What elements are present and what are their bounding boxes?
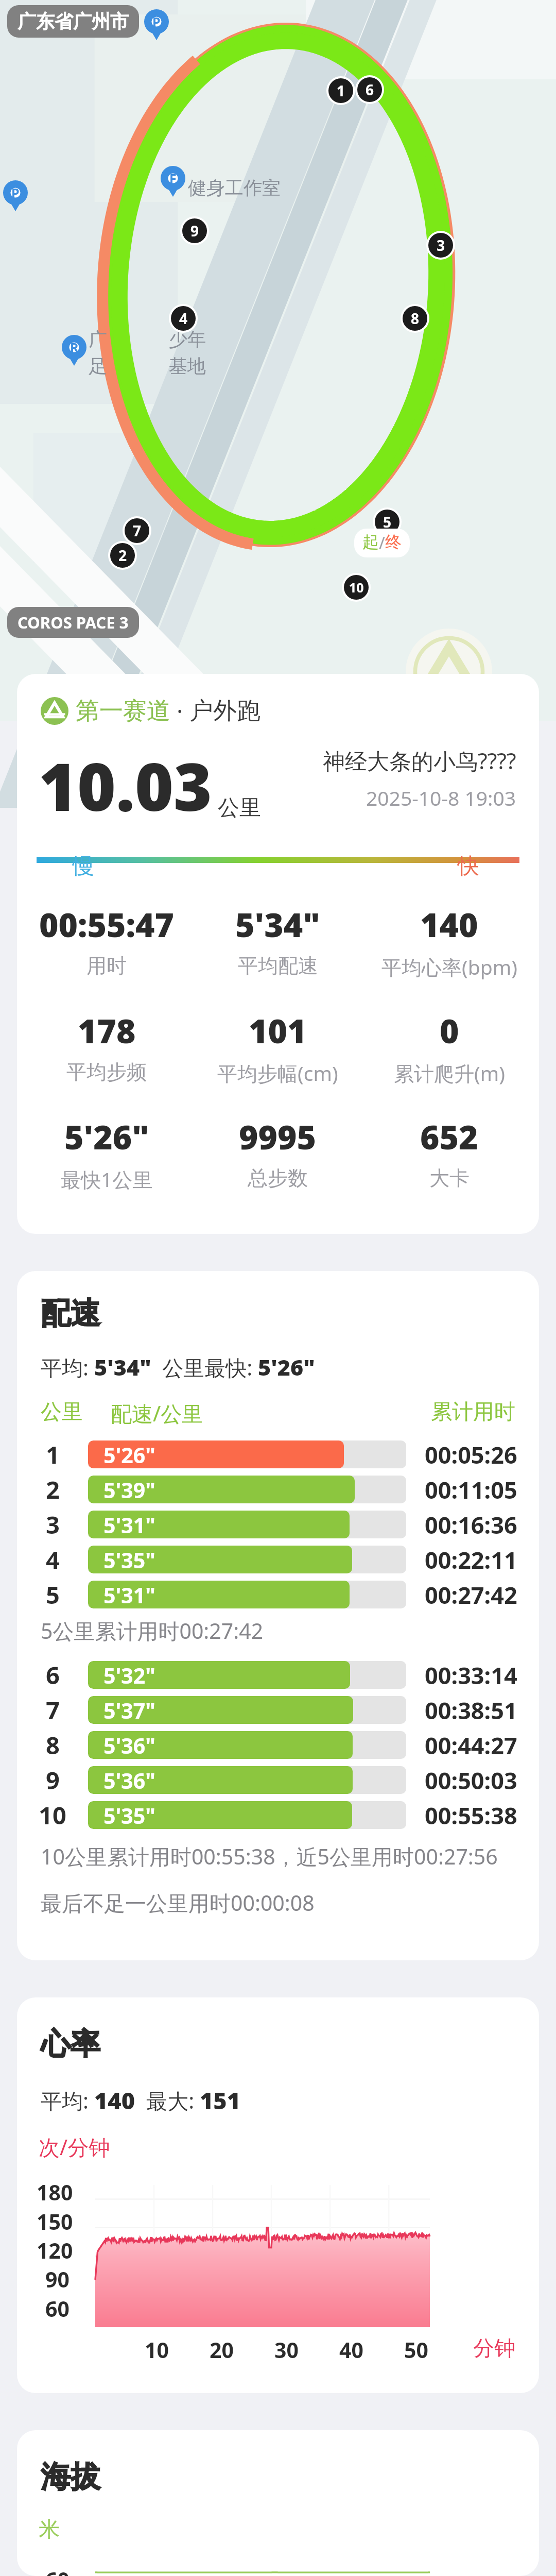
staticText: 基地 [169, 354, 206, 378]
staticText: 健身工作室 [188, 176, 281, 199]
button[interactable]: 3 [428, 233, 453, 258]
button[interactable]: 00:55:47 [21, 902, 192, 978]
staticText: 公里最快: [151, 1353, 258, 1382]
staticText: 00:38:51 [425, 1694, 517, 1726]
button[interactable]: 5 [17, 1577, 539, 1612]
staticText: 最大: [135, 2086, 200, 2115]
button[interactable]: 6 [357, 77, 382, 102]
button[interactable]: 2 [17, 1472, 539, 1507]
button[interactable]: 10 [344, 575, 369, 600]
staticText: 00:55:38 [425, 1800, 517, 1831]
button[interactable]: 8 [17, 1727, 539, 1762]
staticText: 5'31" [103, 1511, 155, 1538]
staticText: 3 [46, 1508, 60, 1541]
staticText: 8 [411, 309, 420, 328]
staticText: 5'31" [103, 1581, 155, 1608]
staticText: 1 [46, 1438, 60, 1471]
staticText: 6 [366, 80, 374, 99]
button[interactable]: 8 [403, 306, 427, 331]
staticText: 30 [274, 2335, 299, 2364]
staticText: 60 [45, 2565, 69, 2576]
staticText: · [170, 694, 189, 727]
staticText: 9 [46, 1764, 60, 1797]
other: 地图兴趣点 [3, 180, 28, 211]
staticText: 平均步频 [66, 1059, 147, 1084]
staticText: 公里 [218, 794, 261, 822]
staticText: 户外跑 [189, 696, 260, 726]
staticText: 平均: [41, 1353, 94, 1382]
staticText: 00:22:11 [425, 1544, 517, 1575]
staticText: 7 [46, 1693, 60, 1726]
button[interactable]: 652 [363, 1114, 535, 1191]
staticText: 5'36" [103, 1731, 155, 1759]
button[interactable]: 3 [17, 1507, 539, 1542]
staticText: 少年 [169, 328, 206, 351]
button[interactable]: 10 [17, 1798, 539, 1833]
button[interactable]: 5'34" [192, 902, 363, 978]
button[interactable]: 5'26" [21, 1114, 192, 1193]
staticText: 0 [440, 1008, 459, 1053]
staticText: 140 [420, 902, 478, 947]
staticText: 5 [46, 1578, 60, 1611]
staticText: 神经大条的小鸟???? [323, 745, 516, 776]
staticText: 累计用时 [431, 1399, 515, 1426]
button[interactable]: 7 [125, 518, 149, 543]
staticText: 慢 [73, 853, 94, 880]
staticText: 178 [78, 1008, 136, 1053]
staticText: 20 [210, 2335, 234, 2364]
staticText: 总步数 [248, 1165, 308, 1191]
staticText: COROS PACE 3 [18, 612, 129, 633]
staticText: 00:33:14 [425, 1659, 517, 1691]
other: 地图兴趣点 [161, 166, 185, 197]
button[interactable]: 101 [192, 1008, 363, 1087]
staticText: 2 [46, 1473, 60, 1506]
button[interactable]: 9995 [192, 1114, 363, 1191]
button[interactable]: 0 [363, 1008, 535, 1087]
staticText: 00:11:05 [425, 1474, 517, 1505]
staticText: 起 [362, 532, 379, 552]
staticText: 101 [249, 1008, 307, 1053]
staticText: 累计爬升(m) [394, 1059, 505, 1087]
staticText: 00:05:26 [425, 1439, 517, 1470]
staticText: R [70, 338, 79, 356]
staticText: 50 [404, 2335, 428, 2364]
staticText: 120 [37, 2236, 73, 2265]
staticText: 00:27:42 [425, 1579, 517, 1611]
button[interactable]: 9 [17, 1762, 539, 1798]
staticText: 9995 [239, 1114, 317, 1159]
staticText: 终 [385, 532, 402, 552]
staticText: 10公里累计用时00:55:38，近5公里用时00:27:56 [41, 1842, 498, 1871]
button[interactable]: 178 [21, 1008, 192, 1084]
staticText: 9 [190, 221, 199, 241]
staticText: 分钟 [473, 2335, 515, 2362]
staticText: 用时 [86, 953, 127, 978]
button[interactable]: 2 [110, 543, 135, 568]
staticText: 最快1公里 [61, 1165, 153, 1193]
button[interactable]: 6 [17, 1657, 539, 1692]
button[interactable]: 140 [363, 902, 535, 980]
staticText: 00:16:36 [425, 1509, 517, 1540]
staticText: 米 [39, 2516, 60, 2543]
button[interactable]: 9 [182, 218, 207, 243]
other: 地图兴趣点 [144, 9, 169, 40]
button[interactable]: 广东省广州市 [18, 10, 129, 33]
staticText: 心率 [41, 2025, 100, 2063]
staticText: 公里 [41, 1399, 83, 1426]
staticText: 40 [339, 2335, 363, 2364]
staticText: 5'26" [64, 1114, 149, 1159]
staticText: 90 [45, 2265, 69, 2294]
staticText: 10.03 [39, 740, 213, 830]
button[interactable]: 起终点 [362, 532, 402, 554]
button[interactable]: 4 [171, 306, 196, 331]
staticText: 180 [37, 2178, 73, 2207]
button[interactable]: 1 [328, 78, 353, 103]
staticText: 6 [46, 1658, 60, 1691]
button[interactable]: 5 [375, 510, 399, 534]
button[interactable]: 1 [17, 1437, 539, 1472]
button[interactable]: 7 [17, 1692, 539, 1727]
staticText: 60 [45, 2294, 69, 2323]
button[interactable]: 4 [17, 1542, 539, 1577]
staticText: 3 [437, 235, 445, 255]
button[interactable]: COROS PACE 3 [18, 612, 129, 633]
staticText: 5'26" [258, 1352, 315, 1382]
